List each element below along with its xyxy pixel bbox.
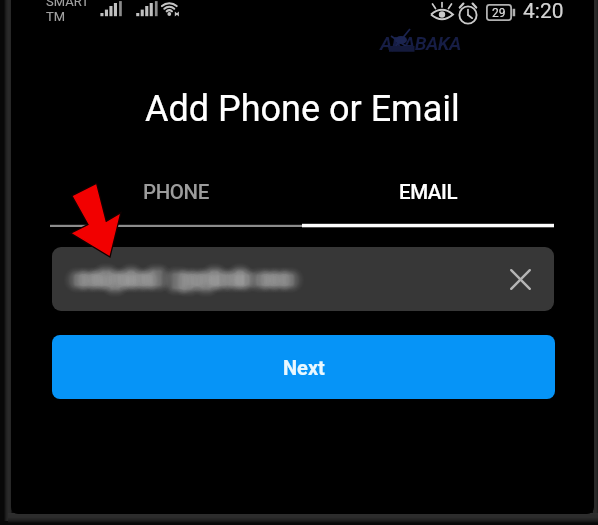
button[interactable]: Clear text — [498, 257, 542, 301]
button[interactable]: EMAIL — [302, 161, 554, 223]
button[interactable]: PHONE — [50, 161, 302, 223]
staticText: Next — [283, 356, 325, 379]
staticText: Add Phone or Email — [145, 88, 460, 130]
staticText: SMART — [46, 0, 89, 9]
staticText: AKABAKA — [380, 32, 461, 54]
staticText: EMAIL — [399, 180, 458, 204]
button[interactable]: Next — [52, 335, 555, 399]
staticText: 4:20 — [523, 0, 564, 24]
staticText: PHONE — [143, 180, 209, 204]
staticText: 29 — [492, 6, 506, 20]
button[interactable]: Clear text — [52, 247, 554, 311]
staticText: TM — [46, 9, 66, 24]
